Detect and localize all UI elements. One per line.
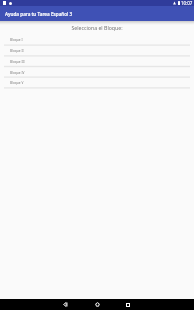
button[interactable]: Home [92, 299, 103, 310]
staticText: Bloque IV [10, 71, 25, 75]
button[interactable]: Bloque IV [0, 67, 194, 78]
staticText: Selecciona el Bloque: [0, 24, 194, 31]
staticText: Bloque II [10, 49, 24, 53]
button[interactable]: Recents [122, 299, 133, 310]
button[interactable]: Bloque II [0, 45, 194, 56]
button[interactable]: Bloque III [0, 56, 194, 67]
staticText: Ayuda para tu Tarea Español 3 [5, 11, 73, 17]
button[interactable]: Bloque V [0, 77, 194, 88]
staticText: 10:07 [181, 0, 193, 6]
staticText: Bloque I [10, 38, 23, 42]
button[interactable]: Back [60, 299, 71, 310]
staticText: Bloque V [10, 81, 24, 85]
staticText: Bloque III [10, 60, 25, 64]
button[interactable]: Bloque I [0, 34, 194, 45]
